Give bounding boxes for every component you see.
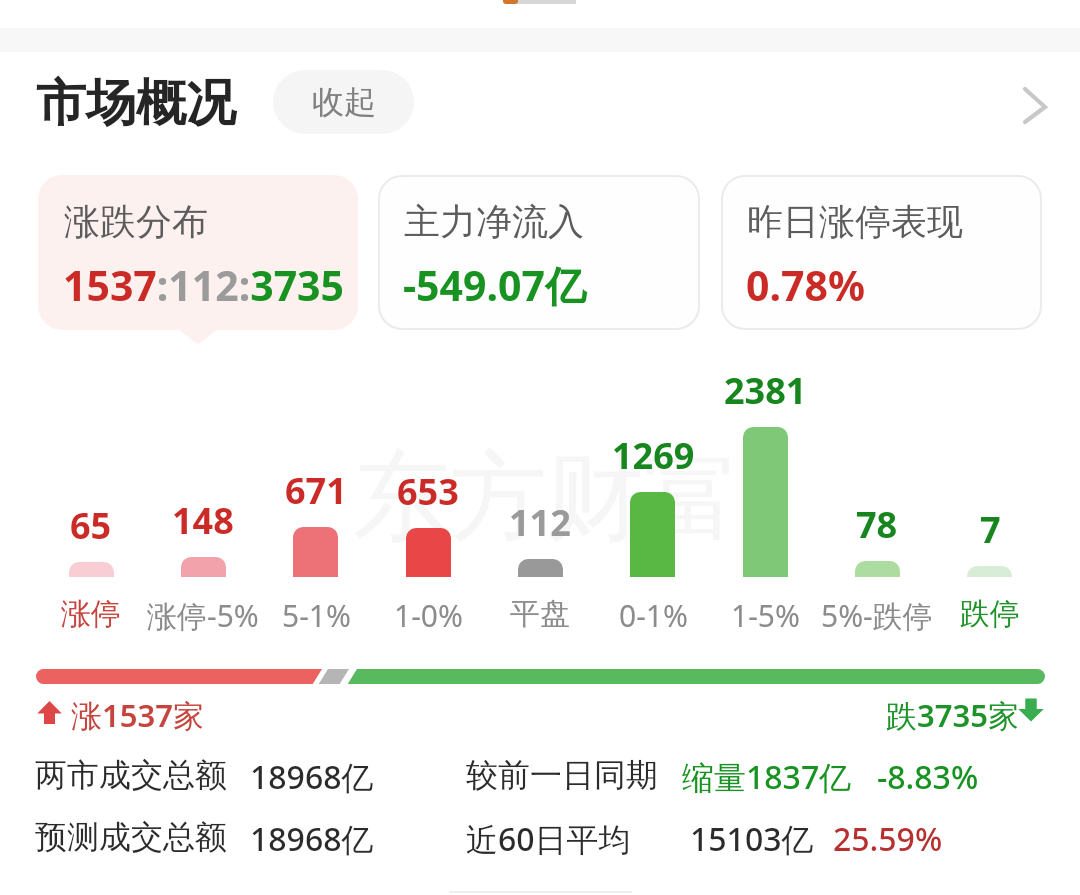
staticText: 18968亿	[250, 755, 374, 799]
button[interactable]: 涨停-5% 148	[147, 365, 259, 630]
button[interactable]: 展开市场概况	[1000, 74, 1064, 138]
staticText: 0.78%	[746, 257, 865, 313]
staticText: 两市成交总额	[35, 755, 227, 795]
staticText: 5-1%	[282, 595, 351, 636]
staticText: 78	[856, 500, 898, 549]
staticText: 5%-跌停	[821, 595, 933, 636]
button[interactable]: 0-1% 1269	[597, 365, 709, 630]
staticText: 1-0%	[394, 595, 463, 636]
staticText: 缩量1837亿	[682, 755, 852, 799]
staticText: 15103亿	[690, 817, 814, 861]
button[interactable]: 涨跌分布	[38, 175, 358, 330]
staticText: 1269	[612, 431, 695, 480]
staticText: 东方财富	[353, 437, 741, 559]
button[interactable]: 5-1% 671	[260, 365, 372, 630]
button[interactable]: 1-0% 653	[372, 365, 484, 630]
staticText: 较前一日同期	[466, 755, 658, 795]
staticText: 近60日平均	[466, 817, 631, 861]
button[interactable]: 涨停 65	[35, 365, 147, 630]
staticText: 112	[509, 498, 571, 547]
staticText: 平盘	[510, 595, 570, 633]
button[interactable]: 跌停 7	[934, 365, 1046, 630]
staticText: 1-5%	[731, 595, 800, 636]
button[interactable]: 收起	[273, 70, 414, 134]
button[interactable]: 5%-跌停 78	[821, 365, 933, 630]
staticText: 2381	[724, 366, 807, 415]
button[interactable]: 主力净流入	[378, 175, 700, 330]
staticText: 65	[70, 501, 112, 550]
staticText: 涨跌分布	[64, 199, 208, 244]
staticText: 7	[980, 505, 1001, 554]
button[interactable]: 平盘 112	[484, 365, 596, 630]
staticText: 跌3735家	[886, 694, 1019, 736]
staticText: 653	[397, 467, 459, 516]
staticText: 涨停	[61, 595, 121, 633]
staticText: 671	[285, 466, 347, 515]
staticText: 涨停-5%	[147, 595, 259, 636]
staticText: 1537:112:3735	[63, 257, 345, 313]
staticText: 18968亿	[250, 817, 374, 861]
staticText: 148	[172, 496, 234, 545]
staticText: -8.83%	[877, 755, 979, 799]
staticText: 昨日涨停表现	[747, 199, 963, 244]
staticText: 主力净流入	[404, 199, 584, 244]
staticText: 25.59%	[833, 817, 943, 861]
button[interactable]: 昨日涨停表现	[721, 175, 1042, 330]
button[interactable]: 1-5% 2381	[709, 365, 821, 630]
staticText: 收起	[312, 82, 376, 122]
staticText: 0-1%	[619, 595, 688, 636]
staticText: 涨1537家	[71, 694, 204, 736]
staticText: -549.07亿	[403, 257, 586, 313]
staticText: 跌停	[960, 595, 1020, 633]
staticText: 市场概况	[36, 72, 236, 135]
staticText: 预测成交总额	[35, 817, 227, 857]
